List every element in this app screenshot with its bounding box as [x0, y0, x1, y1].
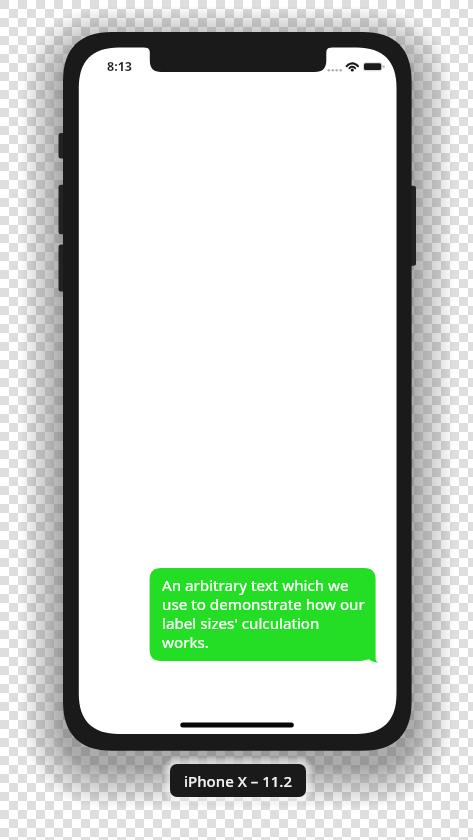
button[interactable]: Side button [409, 186, 416, 266]
staticText: iPhone X – 11.2 [184, 771, 292, 791]
button[interactable]: Volume down [59, 245, 66, 292]
button[interactable]: Silent switch [59, 133, 66, 159]
staticText: 8:13 [107, 58, 132, 75]
button[interactable]: Volume up [59, 185, 66, 235]
staticText: An arbitrary text which we use to demons… [162, 575, 369, 652]
button[interactable]: An arbitrary text which we use to demons… [150, 568, 376, 661]
button[interactable]: iPhone X – 11.2 [170, 764, 306, 797]
